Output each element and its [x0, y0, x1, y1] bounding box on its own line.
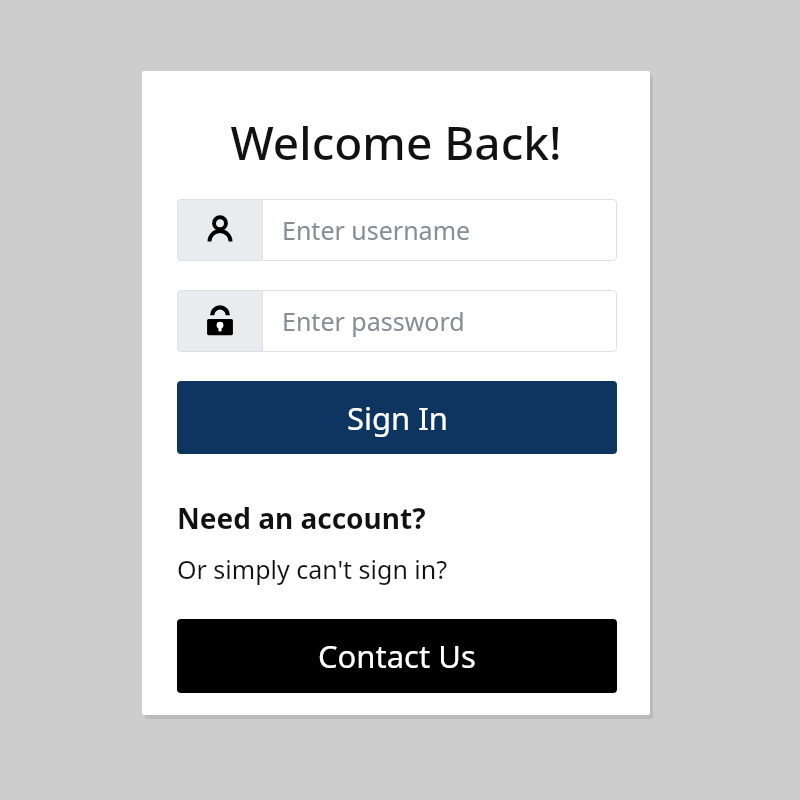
other: Password	[177, 290, 262, 352]
staticText: Enter username	[282, 213, 471, 247]
staticText: Welcome Back!	[142, 111, 650, 174]
staticText: Enter password	[282, 304, 465, 338]
staticText: Sign In	[347, 397, 448, 439]
button[interactable]: Sign In	[177, 381, 617, 454]
staticText: Or simply can't sign in?	[177, 552, 448, 586]
button[interactable]: Password	[177, 290, 617, 352]
staticText: Contact Us	[318, 635, 476, 677]
other: Username	[177, 199, 262, 261]
staticText: Need an account?	[177, 499, 426, 537]
button[interactable]: Username	[177, 199, 617, 261]
button[interactable]: Contact Us	[177, 619, 617, 693]
